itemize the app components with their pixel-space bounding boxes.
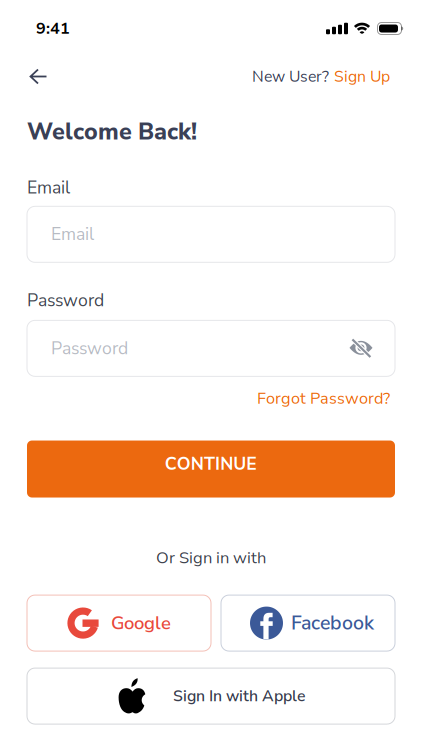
staticText: Email — [27, 176, 70, 200]
button[interactable]: Show password — [349, 338, 395, 359]
button[interactable]: Sign In with Apple — [27, 668, 395, 724]
staticText: Welcome Back! — [27, 116, 197, 148]
staticText: Facebook — [291, 610, 374, 636]
button[interactable]: Facebook — [221, 595, 395, 651]
staticText: Google — [111, 610, 171, 636]
button[interactable]: Google — [27, 595, 211, 651]
staticText: Password — [51, 336, 128, 360]
staticText: 9:41 — [36, 17, 70, 40]
button[interactable]: Sign Up — [334, 66, 390, 87]
staticText: New User? — [252, 66, 329, 87]
staticText: Email — [51, 222, 94, 246]
button[interactable]: Back — [29, 60, 47, 92]
staticText: Forgot Password? — [257, 387, 390, 409]
button[interactable]: CONTINUE — [27, 440, 395, 497]
button[interactable]: Forgot Password? — [257, 387, 390, 409]
staticText: Sign Up — [334, 66, 390, 87]
staticText: Password — [27, 288, 104, 312]
staticText: CONTINUE — [165, 452, 257, 476]
staticText: Sign In with Apple — [173, 685, 305, 707]
staticText: Or Sign in with — [156, 546, 266, 569]
